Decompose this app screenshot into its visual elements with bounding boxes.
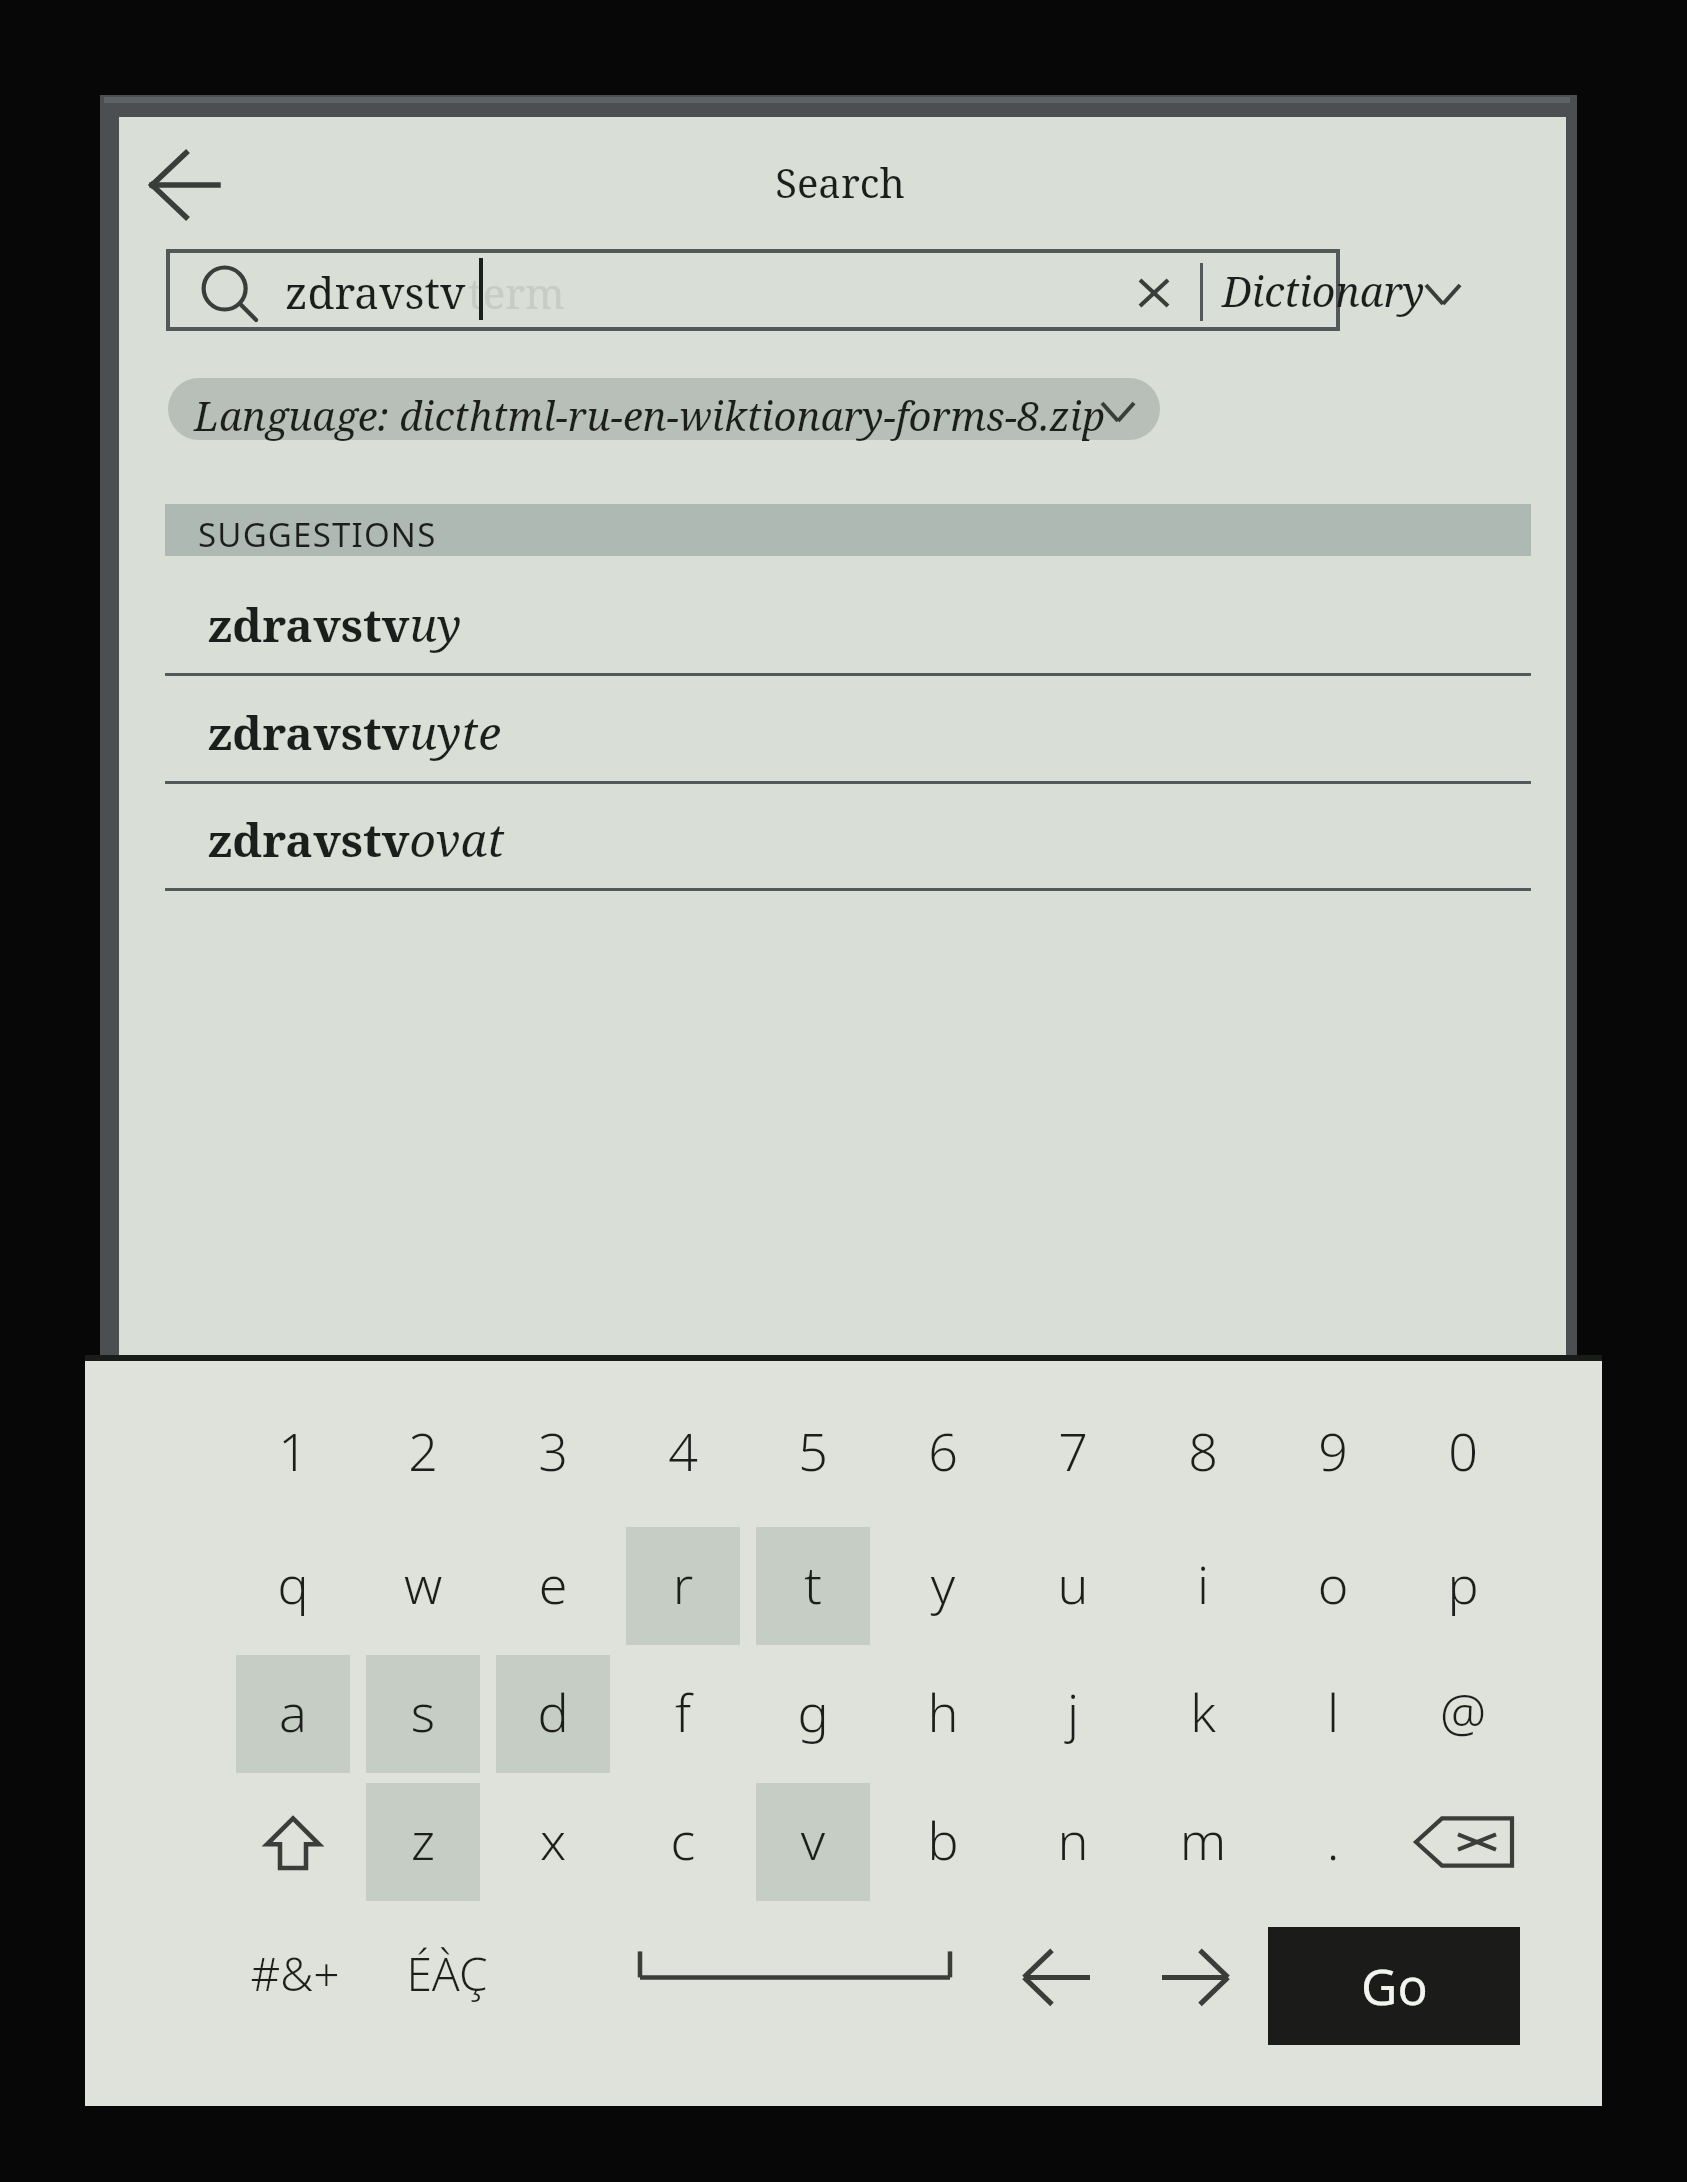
button[interactable]: [1272, 1783, 1394, 1901]
button[interactable]: [622, 1527, 744, 1645]
staticText: Go: [1361, 1952, 1428, 2020]
button[interactable]: [882, 1783, 1004, 1901]
staticText: y: [882, 1548, 1004, 1631]
button[interactable]: [1012, 1655, 1134, 1773]
button[interactable]: [492, 1527, 614, 1645]
button[interactable]: [1142, 1655, 1264, 1773]
button[interactable]: [492, 1783, 614, 1901]
button[interactable]: Back: [140, 140, 250, 230]
staticText: zdravstvuyte: [208, 701, 501, 764]
button[interactable]: Move cursor right: [1140, 1915, 1252, 2035]
staticText: u: [1012, 1548, 1134, 1631]
staticText: m: [1142, 1804, 1264, 1887]
staticText: term: [468, 264, 565, 321]
button[interactable]: [882, 1527, 1004, 1645]
staticText: 0: [1402, 1415, 1524, 1498]
button[interactable]: [220, 1915, 370, 2035]
button[interactable]: [1142, 1527, 1264, 1645]
staticText: #&+: [220, 1942, 370, 2015]
staticText: z: [362, 1804, 484, 1887]
staticText: Search: [640, 155, 1040, 219]
button[interactable]: [1272, 1527, 1394, 1645]
button[interactable]: [1012, 1783, 1134, 1901]
button[interactable]: [165, 683, 1531, 790]
staticText: 7: [1012, 1415, 1134, 1498]
button[interactable]: [165, 790, 1531, 897]
button[interactable]: [165, 575, 1531, 682]
staticText: n: [1012, 1804, 1134, 1887]
staticText: g: [752, 1676, 874, 1759]
staticText: a: [232, 1676, 354, 1759]
button[interactable]: [362, 1397, 484, 1515]
staticText: b: [882, 1804, 1004, 1887]
button[interactable]: [1142, 1397, 1264, 1515]
button[interactable]: [1402, 1655, 1524, 1773]
button[interactable]: Space: [630, 1915, 960, 2035]
button[interactable]: Backspace: [1402, 1783, 1524, 1901]
button[interactable]: [1012, 1527, 1134, 1645]
button[interactable]: [1402, 1527, 1524, 1645]
button[interactable]: [362, 1783, 484, 1901]
staticText: t: [752, 1548, 874, 1631]
staticText: j: [1012, 1676, 1134, 1759]
staticText: x: [492, 1804, 614, 1887]
staticText: d: [492, 1676, 614, 1759]
staticText: @: [1402, 1676, 1524, 1759]
staticText: f: [622, 1676, 744, 1759]
button[interactable]: [492, 1655, 614, 1773]
button[interactable]: [752, 1655, 874, 1773]
staticText: p: [1402, 1548, 1524, 1631]
button[interactable]: [752, 1527, 874, 1645]
staticText: e: [492, 1548, 614, 1631]
staticText: zdravstv: [285, 262, 466, 322]
staticText: k: [1142, 1676, 1264, 1759]
staticText: c: [622, 1804, 744, 1887]
button[interactable]: [1402, 1397, 1524, 1515]
staticText: 5: [752, 1415, 874, 1498]
button[interactable]: [1212, 251, 1338, 329]
button[interactable]: [622, 1655, 744, 1773]
button[interactable]: [622, 1397, 744, 1515]
staticText: r: [622, 1548, 744, 1631]
button[interactable]: [622, 1783, 744, 1901]
button[interactable]: [882, 1397, 1004, 1515]
staticText: 8: [1142, 1415, 1264, 1498]
staticText: 6: [882, 1415, 1004, 1498]
button[interactable]: [1272, 1397, 1394, 1515]
button[interactable]: [1142, 1783, 1264, 1901]
button[interactable]: [882, 1655, 1004, 1773]
button[interactable]: [492, 1397, 614, 1515]
button[interactable]: Clear search: [1125, 265, 1183, 321]
staticText: q: [232, 1548, 354, 1631]
staticText: w: [362, 1548, 484, 1631]
button[interactable]: [168, 378, 1160, 440]
button[interactable]: [232, 1397, 354, 1515]
staticText: h: [882, 1676, 1004, 1759]
staticText: ÉÀÇ: [372, 1942, 522, 2015]
staticText: zdravstvovat: [208, 808, 505, 871]
button[interactable]: Go: [1268, 1927, 1520, 2045]
button[interactable]: [232, 1527, 354, 1645]
button[interactable]: [232, 1655, 354, 1773]
button[interactable]: Move cursor left: [1000, 1915, 1112, 2035]
staticText: 9: [1272, 1415, 1394, 1498]
staticText: 3: [492, 1415, 614, 1498]
staticText: Dictionary: [1222, 263, 1425, 319]
button[interactable]: Shift: [232, 1783, 354, 1901]
button[interactable]: [752, 1397, 874, 1515]
button[interactable]: [1012, 1397, 1134, 1515]
staticText: 2: [362, 1415, 484, 1498]
staticText: SUGGESTIONS: [198, 512, 437, 557]
staticText: Language: dicthtml-ru-en-wiktionary-form…: [194, 388, 1106, 442]
staticText: .: [1272, 1804, 1394, 1887]
staticText: l: [1272, 1676, 1394, 1759]
button[interactable]: [362, 1655, 484, 1773]
button[interactable]: [372, 1915, 522, 2035]
staticText: s: [362, 1676, 484, 1759]
button[interactable]: [752, 1783, 874, 1901]
button[interactable]: [1272, 1655, 1394, 1773]
staticText: v: [752, 1804, 874, 1887]
staticText: zdravstvuy: [208, 593, 462, 656]
button[interactable]: [362, 1527, 484, 1645]
staticText: o: [1272, 1548, 1394, 1631]
